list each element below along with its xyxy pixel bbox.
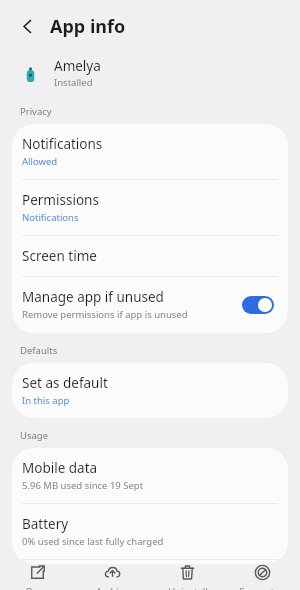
- staticText: Screen time: [22, 247, 97, 265]
- button[interactable]: Manage app if unused: [12, 277, 288, 333]
- staticText: Notifications: [22, 211, 79, 224]
- staticText: Amelya: [54, 57, 101, 75]
- staticText: In this app: [22, 394, 70, 407]
- staticText: Installed: [54, 76, 93, 89]
- button[interactable]: Force stop: [225, 564, 300, 590]
- button[interactable]: Permissions: [12, 180, 288, 235]
- button[interactable]: Set as default: [12, 363, 288, 418]
- button[interactable]: Notifications: [12, 124, 288, 179]
- button[interactable]: Back: [12, 11, 42, 41]
- staticText: Allowed: [22, 155, 58, 168]
- staticText: Mobile data: [22, 459, 98, 477]
- staticText: Uninstall: [168, 585, 208, 590]
- staticText: Remove permissions if app is unused: [22, 308, 188, 321]
- button[interactable]: Archive: [75, 564, 150, 590]
- staticText: Open: [25, 585, 50, 590]
- button[interactable]: Uninstall: [150, 564, 225, 590]
- staticText: Permissions: [22, 191, 99, 209]
- button[interactable]: Amelya: [0, 52, 300, 94]
- staticText: Usage: [20, 429, 49, 442]
- staticText: Privacy: [20, 105, 52, 118]
- staticText: 5.96 MB used since 19 Sept: [22, 479, 144, 492]
- button[interactable]: Open: [0, 564, 75, 590]
- staticText: App info: [50, 14, 126, 39]
- staticText: 0% used since last fully charged: [22, 535, 164, 548]
- button[interactable]: Battery: [12, 504, 288, 559]
- staticText: Battery: [22, 515, 69, 533]
- staticText: Notifications: [22, 135, 103, 153]
- button[interactable]: Mobile data: [12, 448, 288, 503]
- staticText: Manage app if unused: [22, 288, 164, 306]
- staticText: Force stop: [239, 585, 286, 590]
- button[interactable]: Screen time: [12, 236, 288, 276]
- staticText: Archive: [96, 585, 129, 590]
- staticText: Set as default: [22, 374, 108, 392]
- staticText: Defaults: [20, 344, 58, 357]
